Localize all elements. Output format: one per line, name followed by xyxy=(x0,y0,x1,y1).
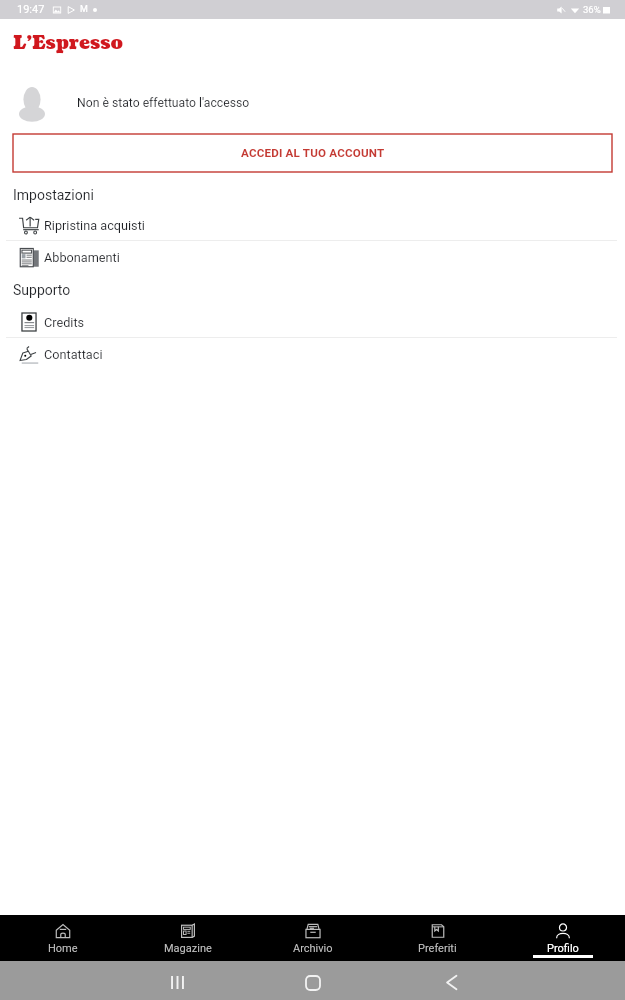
staticText: Preferiti xyxy=(418,942,457,955)
button[interactable]: ACCEDI AL TUO ACCOUNT xyxy=(13,134,612,172)
button[interactable]: Profilo xyxy=(500,915,625,961)
button[interactable]: Credits xyxy=(0,306,625,338)
button[interactable]: Ripristina acquisti xyxy=(0,209,625,241)
staticText: M xyxy=(80,4,88,15)
staticText: Abbonamenti xyxy=(44,250,120,265)
staticText: Credits xyxy=(44,315,85,330)
staticText: Archivio xyxy=(293,942,333,955)
button[interactable]: Archivio xyxy=(250,915,375,961)
staticText: Supporto xyxy=(13,282,71,298)
button[interactable]: Magazine xyxy=(125,915,250,961)
staticText: L'Espresso xyxy=(13,30,124,56)
staticText: Home xyxy=(48,942,78,955)
staticText: 36% xyxy=(583,4,601,15)
staticText: Impostazioni xyxy=(13,187,94,203)
staticText: Magazine xyxy=(164,942,212,955)
button[interactable]: Recent apps xyxy=(146,963,206,1000)
staticText: Non è stato effettuato l'accesso xyxy=(77,96,250,110)
button[interactable]: Preferiti xyxy=(375,915,500,961)
button[interactable]: Back xyxy=(421,963,481,1000)
button[interactable]: Home xyxy=(283,963,343,1000)
button[interactable]: Abbonamenti xyxy=(0,241,625,273)
staticText: Ripristina acquisti xyxy=(44,218,145,233)
staticText: ACCEDI AL TUO ACCOUNT xyxy=(241,146,385,160)
staticText: Profilo xyxy=(547,942,579,955)
button[interactable]: Contattaci xyxy=(0,338,625,370)
button[interactable]: Home xyxy=(0,915,125,961)
staticText: 19:47 xyxy=(17,3,45,16)
staticText: Contattaci xyxy=(44,347,103,362)
